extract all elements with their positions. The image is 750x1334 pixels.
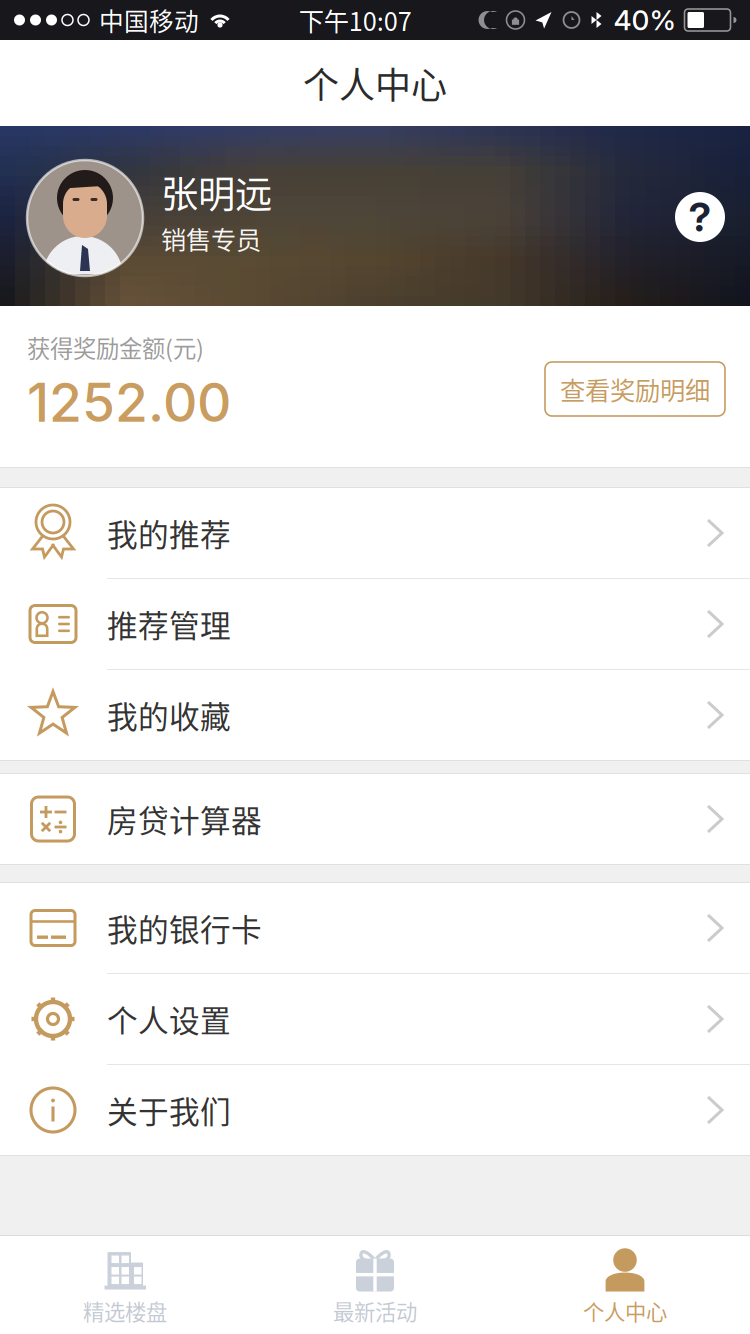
- staticText: 40%: [613, 3, 676, 37]
- staticText: 我的收藏: [107, 693, 231, 737]
- button[interactable]: 我的推荐: [0, 488, 750, 578]
- staticText: 我的银行卡: [107, 906, 262, 950]
- staticText: 个人设置: [107, 997, 231, 1041]
- button[interactable]: 个人设置: [0, 974, 750, 1064]
- staticText: 个人中心: [303, 57, 447, 109]
- staticText: ?: [688, 193, 711, 241]
- staticText: 1252.00: [27, 370, 231, 435]
- staticText: 获得奖励金额(元): [27, 330, 204, 364]
- staticText: 最新活动: [333, 1296, 417, 1326]
- button[interactable]: 个人中心: [500, 1236, 750, 1334]
- button[interactable]: 我的收藏: [0, 670, 750, 760]
- staticText: 下午10:07: [299, 2, 412, 38]
- button[interactable]: 关于我们: [0, 1065, 750, 1155]
- button[interactable]: 帮助: [675, 192, 725, 242]
- button[interactable]: 查看奖励明细: [545, 362, 725, 416]
- staticText: 房贷计算器: [107, 797, 262, 841]
- staticText: 我的推荐: [107, 511, 231, 555]
- staticText: 中国移动: [99, 2, 199, 38]
- staticText: 推荐管理: [107, 602, 231, 646]
- staticText: 张明远: [161, 165, 272, 219]
- staticText: 个人中心: [583, 1296, 667, 1326]
- staticText: 关于我们: [107, 1088, 231, 1132]
- button[interactable]: 最新活动: [250, 1236, 500, 1334]
- staticText: 销售专员: [161, 220, 261, 257]
- button[interactable]: 推荐管理: [0, 579, 750, 669]
- button[interactable]: 我的银行卡: [0, 883, 750, 973]
- staticText: 精选楼盘: [83, 1296, 167, 1326]
- staticText: 查看奖励明细: [560, 371, 710, 407]
- button[interactable]: 精选楼盘: [0, 1236, 250, 1334]
- button[interactable]: 房贷计算器: [0, 774, 750, 864]
